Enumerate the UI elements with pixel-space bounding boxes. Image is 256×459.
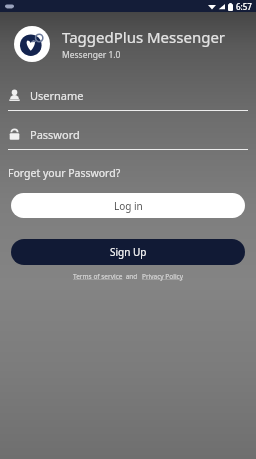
staticText: 6:57 [236, 1, 252, 12]
staticText: Username [30, 88, 84, 103]
staticText: TaggedPlus Messenger [62, 27, 226, 47]
button[interactable]: TaggedPlus logo [14, 26, 50, 62]
staticText: Sign Up [110, 245, 147, 259]
staticText: and [124, 272, 141, 281]
staticText: Messenger 1.0 [62, 49, 121, 61]
button[interactable]: Log in [11, 193, 245, 218]
button[interactable]: Username [0, 88, 256, 111]
button[interactable]: Forget your Password? [6, 164, 123, 182]
button[interactable]: Password [0, 127, 256, 150]
staticText: Password [30, 127, 80, 142]
button[interactable]: Terms of service [72, 271, 124, 282]
staticText: Privacy Policy [142, 272, 184, 281]
staticText: Terms of service [73, 272, 123, 281]
button[interactable]: Privacy Policy [141, 271, 185, 282]
staticText: Log in [114, 199, 143, 213]
button[interactable]: Sign Up [11, 239, 245, 265]
staticText: Forget your Password? [8, 166, 121, 180]
